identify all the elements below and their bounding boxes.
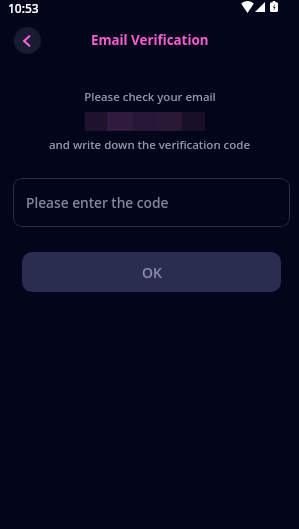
button[interactable]: Back <box>14 27 41 54</box>
staticText: 10:53 <box>8 0 39 16</box>
staticText: OK <box>142 263 162 282</box>
staticText: Email Verification <box>91 31 209 49</box>
button[interactable]: OK <box>22 252 281 292</box>
staticText: Please enter the code <box>26 193 169 212</box>
staticText: Please check your email <box>84 89 216 105</box>
button[interactable]: Please enter the code <box>13 178 290 227</box>
staticText: and write down the verification code <box>49 137 250 153</box>
